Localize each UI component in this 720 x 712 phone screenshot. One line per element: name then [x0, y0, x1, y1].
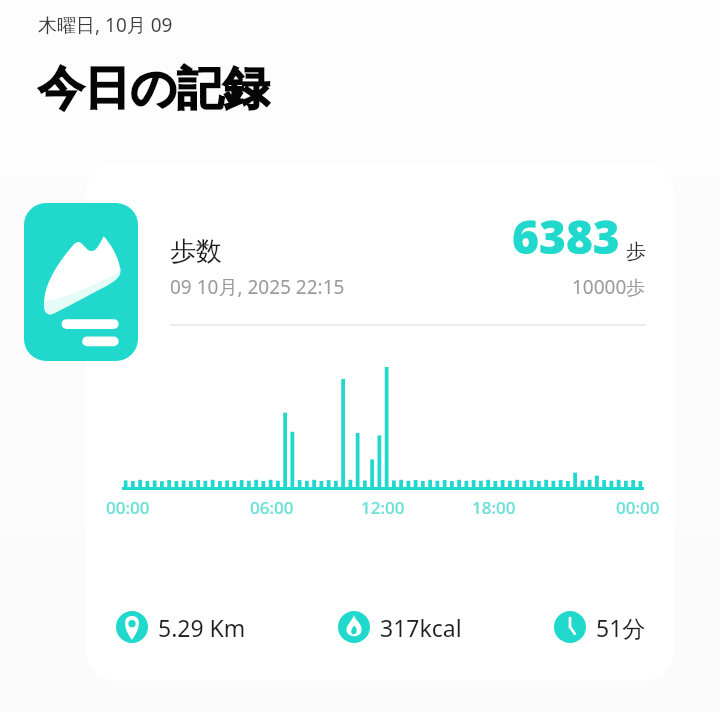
staticText: 00:00	[616, 496, 660, 519]
staticText: 00:00	[106, 496, 150, 519]
staticText: 歩数	[170, 235, 222, 268]
staticText: 317kcal	[380, 612, 462, 643]
staticText: 09 10月, 2025 22:15	[170, 274, 345, 300]
staticText: 51分	[596, 612, 646, 643]
staticText: 18:00	[472, 496, 516, 519]
button[interactable]: Calories	[338, 607, 462, 647]
staticText: 10000歩	[572, 274, 646, 300]
staticText: 歩	[626, 239, 646, 264]
staticText: 今日の記録	[38, 60, 270, 118]
button[interactable]: Distance	[116, 607, 246, 647]
button[interactable]: Steps	[24, 203, 138, 361]
staticText: 5.29 Km	[158, 612, 246, 643]
staticText: 12:00	[361, 496, 405, 519]
staticText: 6383	[512, 205, 620, 268]
button[interactable]: Duration	[554, 607, 646, 647]
button[interactable]: 歩数	[86, 163, 674, 681]
staticText: 木曜日, 10月 09	[38, 12, 173, 38]
staticText: 06:00	[250, 496, 294, 519]
